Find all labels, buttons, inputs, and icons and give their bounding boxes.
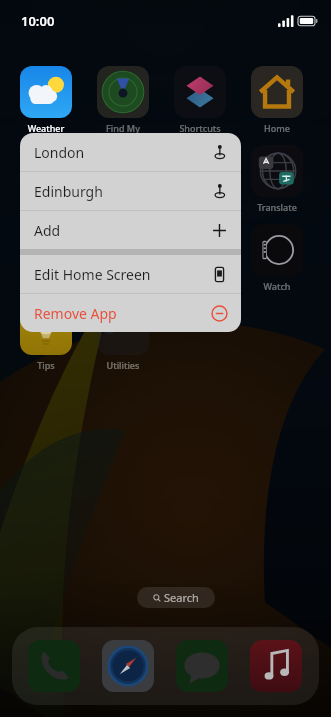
button[interactable]: Edit Home Screen <box>20 255 241 293</box>
staticText: Tips <box>20 359 72 371</box>
staticText: Utilities <box>97 359 149 371</box>
button[interactable]: Tips <box>20 303 72 371</box>
button[interactable]: Watch <box>251 224 303 292</box>
staticText: Shortcuts <box>174 122 226 134</box>
button[interactable]: Translate <box>251 145 303 213</box>
button[interactable]: Add <box>20 211 241 249</box>
button[interactable]: Home <box>251 66 303 134</box>
staticText: 10:00 <box>21 12 55 30</box>
button[interactable]: Messages <box>176 640 228 692</box>
button[interactable]: Find My <box>97 66 149 134</box>
button[interactable]: Phone <box>28 640 80 692</box>
button[interactable]: Music <box>250 640 302 692</box>
button[interactable]: London <box>20 133 241 171</box>
button[interactable]: Weather <box>20 66 72 134</box>
button[interactable]: Utilities <box>97 303 149 371</box>
button[interactable]: Safari <box>102 640 154 692</box>
staticText: Edinburgh <box>34 182 211 201</box>
button[interactable]: Search <box>137 587 215 608</box>
staticText: Weather <box>20 122 72 134</box>
button[interactable]: Edinburgh <box>20 172 241 210</box>
button[interactable]: Remove App <box>20 294 241 332</box>
staticText: Remove App <box>34 304 211 323</box>
button[interactable]: Shortcuts <box>174 66 226 134</box>
staticText: Home <box>251 122 303 134</box>
staticText: Find My <box>97 122 149 134</box>
staticText: Watch <box>251 280 303 292</box>
staticText: Translate <box>251 201 303 213</box>
staticText: Edit Home Screen <box>34 265 211 284</box>
staticText: Search <box>164 590 199 605</box>
staticText: Add <box>34 221 211 240</box>
staticText: London <box>34 143 211 162</box>
